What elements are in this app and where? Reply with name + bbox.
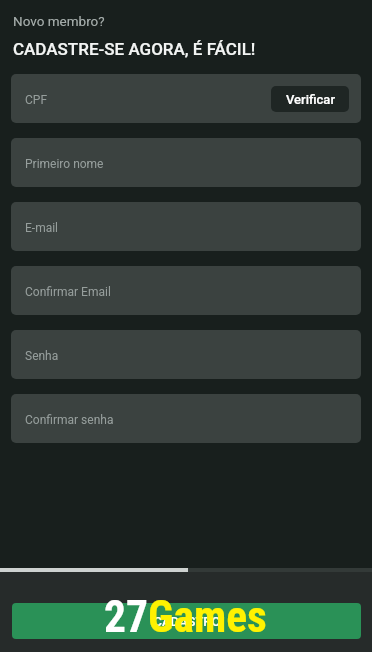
button[interactable]: Confirmar Email (11, 266, 361, 315)
button[interactable]: Primeiro nome (11, 138, 361, 187)
staticText: Senha (25, 349, 59, 363)
staticText: Games (148, 592, 267, 643)
button[interactable]: CPF (11, 74, 361, 123)
staticText: CADASTRO (153, 614, 221, 629)
staticText: 27 (104, 592, 148, 643)
button[interactable]: Confirmar senha (11, 394, 361, 443)
staticText: Primeiro nome (25, 157, 104, 171)
button[interactable]: CADASTRO (12, 603, 361, 639)
staticText: Verificar (286, 92, 335, 107)
staticText: Confirmar Email (25, 285, 111, 299)
staticText: CADASTRE-SE AGORA, É FÁCIL! (13, 39, 256, 59)
button[interactable]: Senha (11, 330, 361, 379)
staticText: E-mail (25, 221, 59, 235)
staticText: CPF (25, 93, 48, 107)
staticText: Confirmar senha (25, 413, 114, 427)
other: Progresso do cadastro (0, 568, 372, 572)
button[interactable]: E-mail (11, 202, 361, 251)
button[interactable]: Verificar (271, 86, 349, 112)
staticText: Novo membro? (13, 13, 105, 29)
